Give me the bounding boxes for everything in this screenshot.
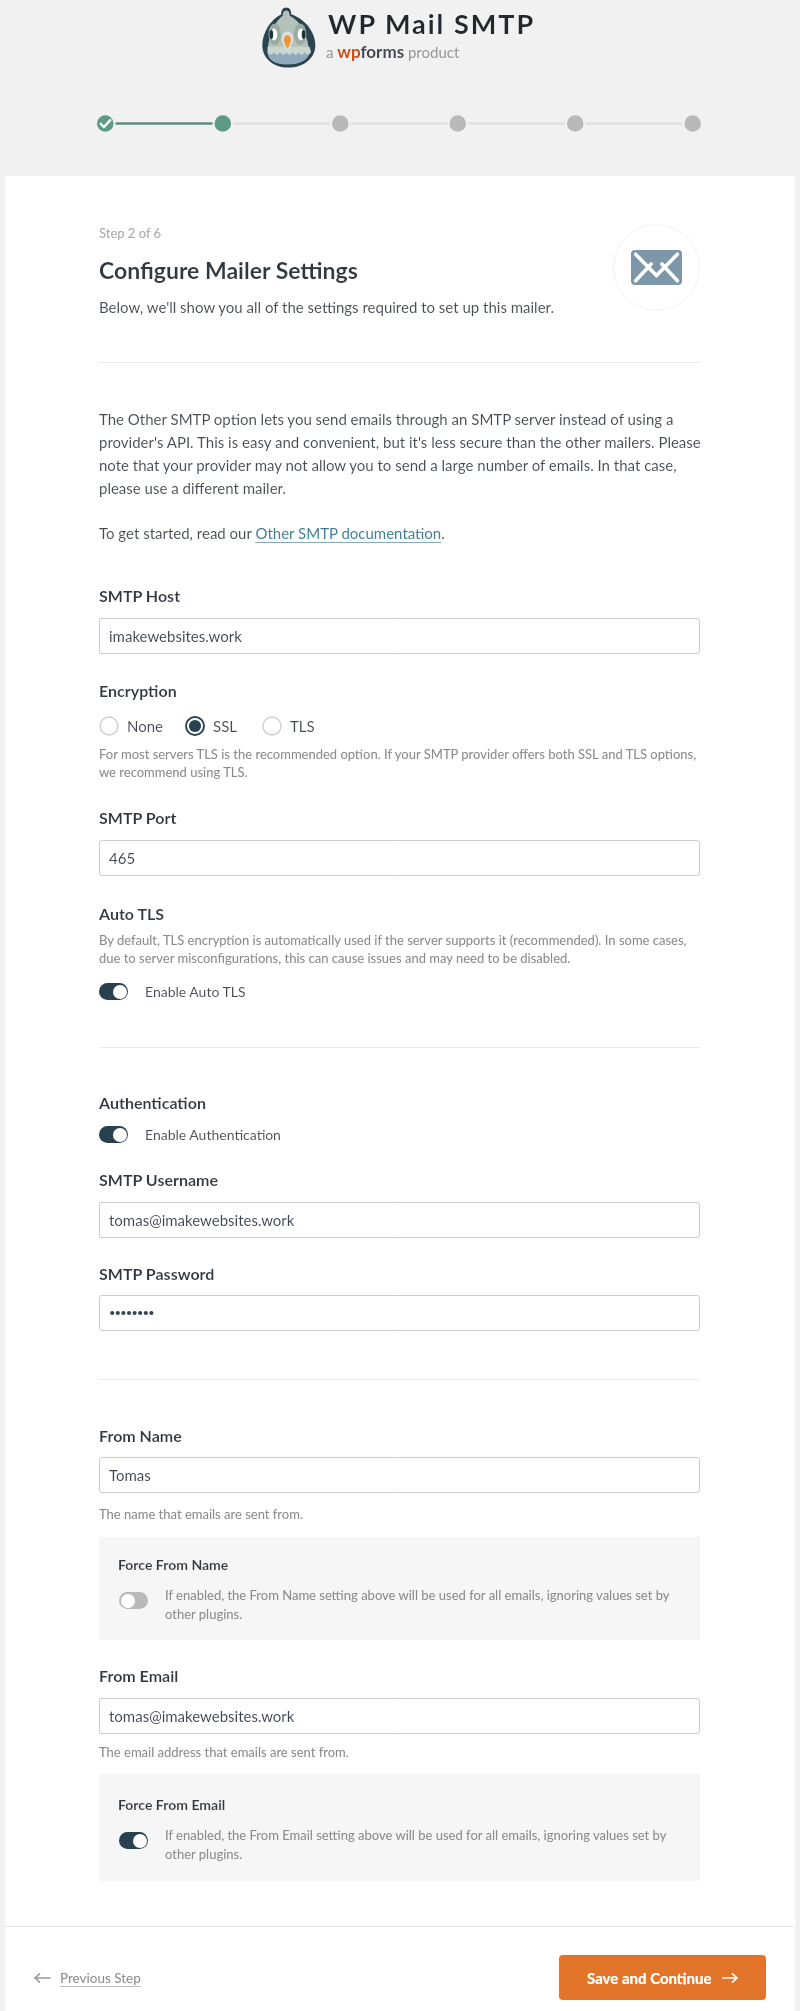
staticText: For most servers TLS is the recommended … bbox=[99, 746, 697, 780]
staticText: Save and Continue bbox=[587, 1969, 712, 1987]
button[interactable]: SSL bbox=[185, 715, 237, 736]
staticText: The email address that emails are sent f… bbox=[99, 1744, 349, 1760]
button[interactable]: tomas@imakewebsites.work bbox=[99, 1698, 700, 1734]
staticText: Configure Mailer Settings bbox=[99, 256, 358, 284]
button[interactable]: TLS bbox=[262, 715, 315, 736]
staticText: imakewebsites.work bbox=[109, 627, 242, 645]
staticText: Authentication bbox=[99, 1093, 206, 1112]
staticText: SMTP Port bbox=[99, 808, 177, 827]
staticText: None bbox=[127, 717, 164, 735]
staticText: The Other SMTP option lets you send emai… bbox=[99, 410, 700, 497]
staticText: SMTP Password bbox=[99, 1264, 215, 1283]
button[interactable]: Toggle on bbox=[99, 1126, 128, 1143]
button[interactable]: 465 bbox=[99, 840, 700, 876]
staticText: tomas@imakewebsites.work bbox=[109, 1707, 295, 1725]
button[interactable] bbox=[99, 1295, 700, 1331]
staticText: Previous Step bbox=[60, 1970, 141, 1986]
staticText: WP Mail SMTP bbox=[328, 7, 536, 39]
staticText: tomas@imakewebsites.work bbox=[109, 1211, 295, 1229]
staticText: a wpforms product bbox=[326, 41, 460, 61]
button[interactable]: tomas@imakewebsites.work bbox=[99, 1202, 700, 1238]
staticText: Tomas bbox=[109, 1466, 151, 1484]
staticText: Encryption bbox=[99, 681, 177, 700]
staticText: If enabled, the From Name setting above … bbox=[165, 1587, 670, 1622]
staticText: TLS bbox=[290, 717, 315, 735]
staticText: Force From Email bbox=[118, 1796, 226, 1813]
button[interactable]: Previous Step bbox=[30, 1962, 145, 1994]
button[interactable]: Save and Continue bbox=[559, 1955, 766, 2000]
staticText: SMTP Host bbox=[99, 586, 181, 605]
staticText: 465 bbox=[109, 849, 136, 867]
staticText: To get started, read our Other SMTP docu… bbox=[99, 524, 445, 542]
staticText: By default, TLS encryption is automatica… bbox=[99, 932, 687, 966]
staticText: SMTP Username bbox=[99, 1170, 219, 1189]
staticText: Enable Auto TLS bbox=[145, 983, 246, 1000]
staticText: From Name bbox=[99, 1426, 182, 1445]
staticText: The name that emails are sent from. bbox=[99, 1506, 303, 1522]
button[interactable]: None bbox=[99, 715, 164, 736]
staticText: Enable Authentication bbox=[145, 1126, 281, 1143]
staticText: If enabled, the From Email setting above… bbox=[165, 1827, 667, 1862]
button[interactable]: Toggle on bbox=[119, 1832, 148, 1849]
staticText: From Email bbox=[99, 1666, 179, 1685]
other: Mailer icon bbox=[613, 224, 700, 311]
staticText: Auto TLS bbox=[99, 904, 165, 923]
staticText: Step 2 of 6 bbox=[99, 225, 162, 241]
button[interactable]: Tomas bbox=[99, 1457, 700, 1493]
staticText: Below, we'll show you all of the setting… bbox=[99, 298, 554, 316]
button[interactable]: Toggle off bbox=[119, 1592, 148, 1609]
staticText: Force From Name bbox=[118, 1556, 229, 1573]
staticText: SSL bbox=[213, 717, 237, 735]
button[interactable]: Toggle on bbox=[99, 983, 128, 1000]
button[interactable]: imakewebsites.work bbox=[99, 618, 700, 654]
